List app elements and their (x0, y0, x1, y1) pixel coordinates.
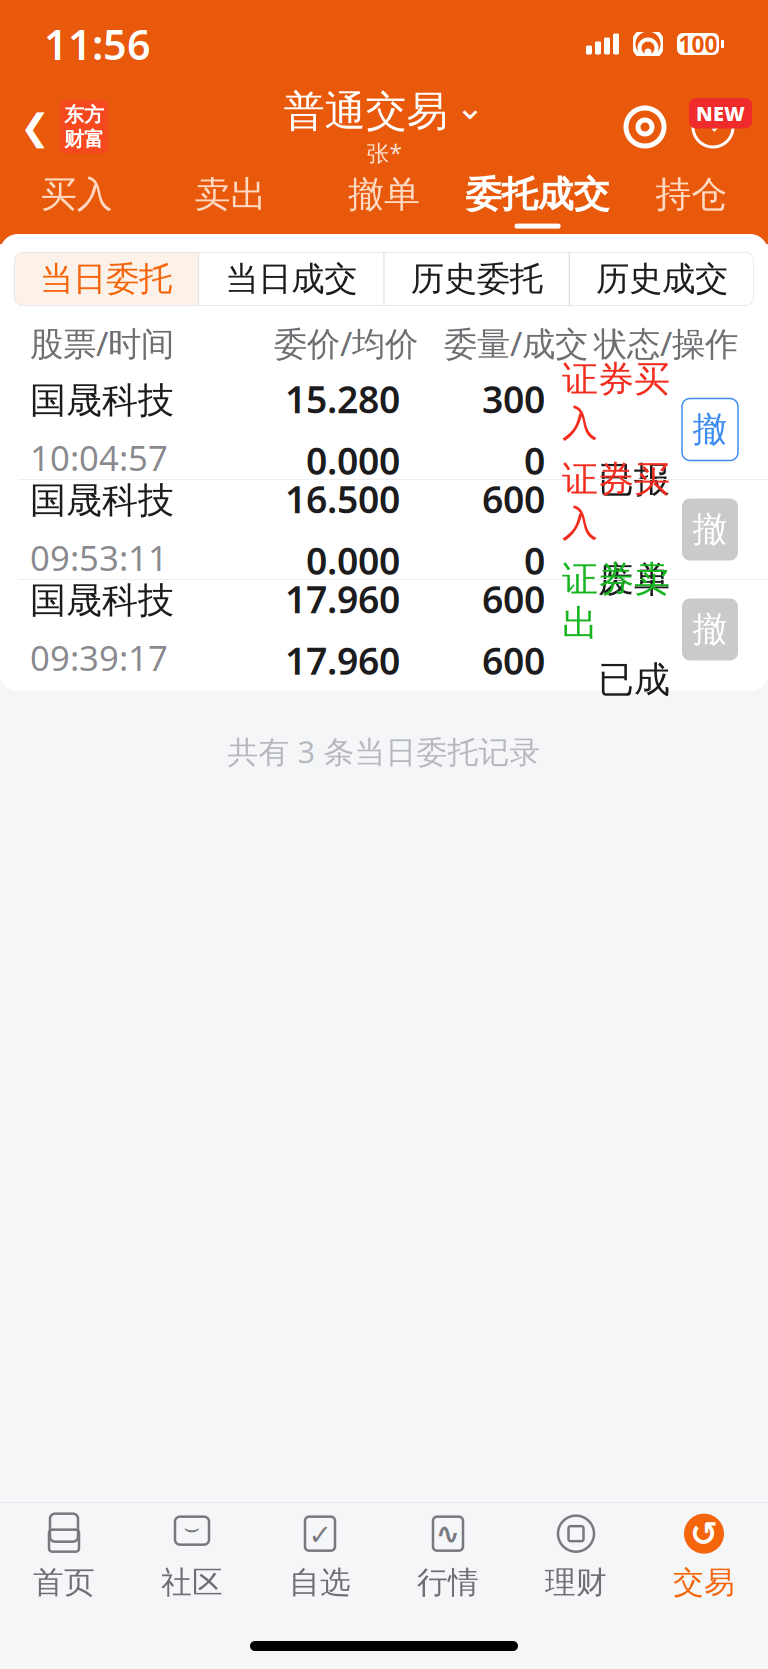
staticText: 300 (482, 374, 545, 423)
button[interactable]: 撤单 (682, 398, 738, 460)
staticText: 财富 (64, 127, 104, 152)
button[interactable]: 卖出 (154, 166, 307, 232)
staticText: 证券买入 (562, 357, 670, 446)
staticText: 17.960 (285, 574, 400, 623)
staticText: 证券卖出 (562, 557, 670, 646)
button[interactable]: ↺ (640, 1503, 768, 1611)
staticText: ⌣ (183, 1516, 200, 1541)
button[interactable]: 刷新 (684, 98, 742, 156)
staticText: 国晟科技 (30, 478, 174, 523)
button[interactable]: ⌣ (128, 1503, 256, 1611)
staticText: 东方 (64, 102, 104, 127)
button[interactable]: 设置 (616, 98, 674, 156)
button[interactable]: 撤单 (682, 498, 738, 560)
staticText: 11:56 (44, 17, 151, 71)
staticText: 撤单 (348, 172, 420, 217)
staticText: 0.000 (306, 435, 400, 485)
button[interactable]: ∿ (384, 1503, 512, 1611)
staticText: 买入 (41, 172, 113, 217)
staticText: 委托成交 (466, 172, 610, 217)
button[interactable]: 理财 (512, 1503, 640, 1611)
button[interactable]: 当日成交 (199, 252, 383, 306)
button[interactable]: 返回 东方财富 (0, 95, 128, 159)
staticText: 0 (524, 435, 545, 485)
staticText: 09:53:11 (30, 535, 168, 581)
staticText: 撤 (692, 408, 727, 451)
staticText: 100 (678, 29, 717, 59)
staticText: 600 (482, 635, 545, 685)
staticText: ✓ (308, 1519, 331, 1551)
staticText: 600 (482, 474, 545, 523)
staticText: 0.000 (306, 535, 400, 585)
staticText: 废单 (598, 558, 670, 602)
staticText: 撤 (692, 608, 727, 651)
button[interactable]: 国晟科技 (0, 380, 768, 479)
staticText: 首页 (33, 1564, 95, 1601)
button[interactable]: 撤单 (307, 166, 461, 232)
staticText: 15.280 (285, 374, 400, 423)
staticText: 张* (366, 138, 401, 168)
staticText: 普通交易 (283, 86, 447, 137)
staticText: ⌄ (455, 87, 484, 127)
staticText: 历史委托 (411, 258, 543, 299)
staticText: 理财 (545, 1564, 607, 1601)
button[interactable]: 当日委托 (14, 252, 198, 306)
staticText: 10:04:57 (30, 435, 168, 481)
staticText: 当日委托 (40, 258, 172, 299)
staticText: NEW (696, 100, 745, 127)
staticText: 委价/均价 (274, 321, 418, 365)
staticText: 已成 (598, 658, 670, 702)
staticText: 委量/成交 (444, 321, 588, 365)
staticText: ∿ (435, 1517, 460, 1550)
staticText: 行情 (417, 1564, 479, 1601)
staticText: ↗ (708, 107, 733, 140)
staticText: 状态/操作 (594, 321, 738, 365)
staticText: 交易 (673, 1564, 735, 1601)
staticText: 共有 3 条当日委托记录 (227, 731, 540, 772)
staticText: 17.960 (285, 635, 400, 685)
staticText: 国晟科技 (30, 578, 174, 623)
button[interactable]: ✓ (256, 1503, 384, 1611)
button[interactable]: 历史委托 (385, 252, 569, 306)
staticText: ❮ (20, 107, 50, 147)
staticText: 自选 (289, 1564, 351, 1601)
staticText: 股票/时间 (30, 321, 174, 365)
button[interactable]: 委托成交 (461, 166, 614, 232)
button[interactable]: 国晟科技 (0, 580, 768, 679)
button[interactable]: 撤单 (682, 598, 738, 660)
staticText: 09:39:17 (30, 635, 168, 681)
button[interactable]: 持仓 (614, 166, 768, 232)
staticText: 已报 (598, 458, 670, 502)
staticText: 国晟科技 (30, 378, 174, 423)
staticText: 600 (482, 574, 545, 623)
staticText: 历史成交 (596, 258, 728, 299)
button[interactable]: 历史成交 (570, 252, 754, 306)
staticText: ↺ (690, 1515, 718, 1553)
button[interactable]: 普通交易 (283, 86, 484, 137)
button[interactable]: 买入 (0, 166, 154, 232)
button[interactable]: 国晟科技 (0, 480, 768, 579)
staticText: 证券买入 (562, 457, 670, 546)
staticText: 0 (524, 535, 545, 585)
staticText: 社区 (161, 1564, 223, 1601)
staticText: 当日成交 (225, 258, 357, 299)
staticText: 撤 (692, 508, 727, 551)
staticText: 持仓 (655, 172, 727, 217)
staticText: 16.500 (285, 474, 400, 523)
staticText: 卖出 (194, 172, 266, 217)
button[interactable]: 首页 (0, 1503, 128, 1611)
